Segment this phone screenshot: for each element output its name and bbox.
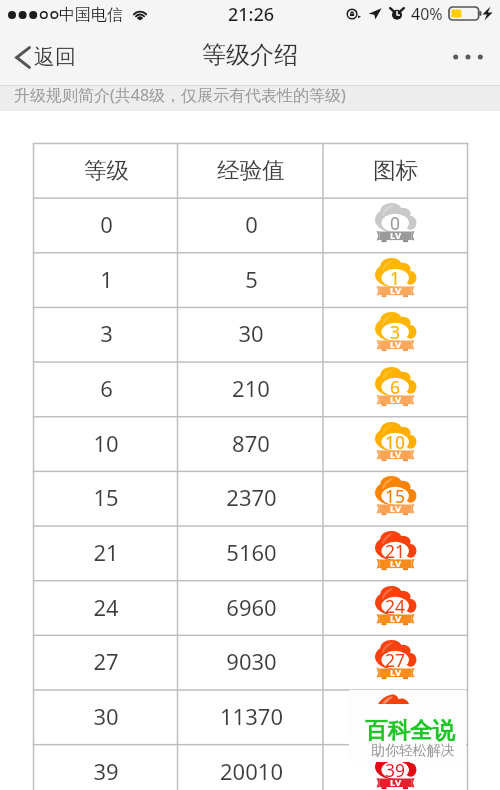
staticText: 6960 [226,592,277,622]
staticText: 经验值 [217,156,285,184]
staticText: 助你轻松解决 [371,742,455,760]
staticText: 30 [93,701,119,731]
staticText: 5160 [226,537,277,567]
staticText: LV [390,721,402,733]
staticText: 39 [93,756,119,786]
staticText: 等级介绍 [202,40,298,70]
staticText: 0 [390,211,401,235]
staticText: LV [390,284,402,296]
staticText: 27 [93,646,119,676]
staticText: 870 [232,428,270,458]
staticText: 15 [93,482,119,512]
staticText: 0 [100,209,113,239]
staticText: LV [390,666,402,678]
staticText: 24 [385,594,406,618]
staticText: 10 [385,430,406,454]
staticText: 3 [390,320,401,344]
staticText: 21:26 [228,2,275,27]
staticText: 百科全说 [365,716,455,744]
staticText: 20010 [220,756,283,786]
staticText: LV [390,338,402,350]
staticText: 图标 [373,156,418,184]
staticText: 10 [93,428,119,458]
staticText: 11370 [220,701,283,731]
staticText: 返回 [34,44,76,70]
staticText: 1 [100,264,113,294]
staticText: 27 [385,648,406,672]
staticText: 3 [100,318,113,348]
staticText: LV [390,229,402,241]
staticText: 5 [245,264,258,294]
staticText: 15 [385,484,406,508]
staticText: 6 [390,375,401,399]
staticText: 210 [232,373,270,403]
staticText: 40% [411,3,443,25]
staticText: LV [390,502,402,514]
staticText: LV [390,776,402,788]
button[interactable]: More options [436,29,500,85]
staticText: 2370 [226,482,277,512]
staticText: 等级 [84,156,129,184]
button[interactable]: 返回 [0,29,88,85]
staticText: 中国电信 [59,5,123,25]
staticText: 24 [93,592,119,622]
staticText: LV [390,393,402,405]
staticText: 升级规则简介(共48级，仅展示有代表性的等级) [14,84,346,106]
staticText: 30 [385,703,406,727]
staticText: 39 [385,758,406,782]
staticText: LV [390,448,402,460]
staticText: 30 [238,318,264,348]
staticText: 9030 [226,646,277,676]
staticText: 6 [100,373,113,403]
staticText: 0 [245,209,258,239]
staticText: 21 [93,537,119,567]
staticText: 1 [390,266,401,290]
staticText: 21 [385,539,406,563]
staticText: LV [390,612,402,624]
staticText: LV [390,557,402,569]
